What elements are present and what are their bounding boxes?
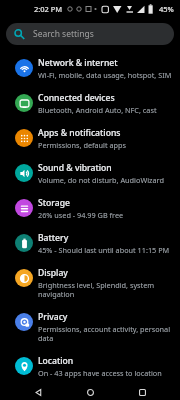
button[interactable]: Display <box>0 261 180 305</box>
staticText: Permissions, default apps <box>38 140 127 150</box>
staticText: Permissions, account activity, personal … <box>38 324 172 343</box>
staticText: 26% used - 94.99 GB free <box>38 210 124 220</box>
staticText: Apps & notifications <box>38 127 121 139</box>
button[interactable]: Search settings <box>6 23 174 45</box>
staticText: Volume, do not disturb, AudioWizard <box>38 175 164 185</box>
button[interactable]: Connected devices <box>0 86 180 121</box>
staticText: Battery <box>38 232 69 244</box>
staticText: Connected devices <box>38 92 115 104</box>
staticText: Storage <box>38 197 70 209</box>
staticText: 45% <box>159 4 174 14</box>
button[interactable]: Storage <box>0 191 180 226</box>
staticText: Sound & vibration <box>38 162 112 174</box>
staticText: Location <box>38 355 74 367</box>
staticText: On - 43 apps have access to location <box>38 368 162 378</box>
button[interactable]: Privacy <box>0 305 180 349</box>
button[interactable]: Recent apps <box>128 385 156 400</box>
staticText: 45% - Should last until about 11:15 PM <box>38 245 170 255</box>
button[interactable]: Back <box>24 385 52 400</box>
button[interactable]: Network & internet <box>0 51 180 86</box>
staticText: 2:02 PM <box>34 4 63 14</box>
staticText: Bluetooth, Android Auto, NFC, cast <box>38 105 157 115</box>
staticText: Brightness level, Splendid, system navig… <box>38 280 172 299</box>
button[interactable]: Home <box>76 385 104 400</box>
staticText: Search settings <box>33 28 94 40</box>
staticText: Display <box>38 267 68 279</box>
button[interactable]: Sound & vibration <box>0 156 180 191</box>
staticText: Wi-Fi, mobile, data usage, hotspot, SIM <box>38 70 172 80</box>
button[interactable]: Location <box>0 349 180 384</box>
staticText: Network & internet <box>38 57 118 69</box>
staticText: Privacy <box>38 311 68 323</box>
button[interactable]: Battery <box>0 226 180 261</box>
button[interactable]: Apps & notifications <box>0 121 180 156</box>
